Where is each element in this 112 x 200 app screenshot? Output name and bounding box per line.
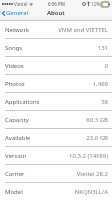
button[interactable]: Available <box>0 129 112 146</box>
button[interactable]: Capacity <box>0 111 112 128</box>
button[interactable]: Photos <box>0 75 112 92</box>
staticText: NKQN3LL/A <box>74 188 108 196</box>
staticText: General <box>6 9 29 17</box>
button[interactable]: Model <box>0 183 112 200</box>
button[interactable]: Videos <box>0 57 112 74</box>
staticText: Carrier <box>5 170 25 178</box>
button[interactable]: Network <box>0 21 112 38</box>
button[interactable]: General <box>0 8 33 18</box>
staticText: 58 <box>101 98 108 106</box>
staticText: 10.3.2 (14F89) <box>69 152 108 160</box>
staticText: Videos <box>5 62 24 70</box>
staticText: About <box>47 9 65 17</box>
staticText: Available <box>5 134 31 142</box>
staticText: Songs <box>5 44 23 52</box>
staticText: 23.6 GB <box>86 134 108 142</box>
staticText: 12% <box>91 1 100 7</box>
staticText: Capacity <box>5 116 29 124</box>
staticText: 0 <box>104 62 108 70</box>
staticText: 1,469 <box>92 80 108 88</box>
button[interactable]: Applications <box>0 93 112 110</box>
staticText: Version <box>5 152 27 160</box>
button[interactable]: Carrier <box>0 165 112 182</box>
staticText: 131 <box>97 44 108 52</box>
staticText: 60.3 GB <box>86 116 108 124</box>
staticText: Viettel <box>14 1 28 7</box>
button[interactable]: Version <box>0 147 112 164</box>
staticText: VNM and VIETTEL <box>58 26 108 34</box>
staticText: Viettel 28.2 <box>76 170 108 178</box>
staticText: Network <box>5 26 30 34</box>
staticText: Photos <box>5 80 25 88</box>
staticText: 6:56 PM <box>48 1 65 7</box>
staticText: Model <box>5 188 23 196</box>
button[interactable]: Songs <box>0 39 112 56</box>
staticText: Applications <box>5 98 40 106</box>
